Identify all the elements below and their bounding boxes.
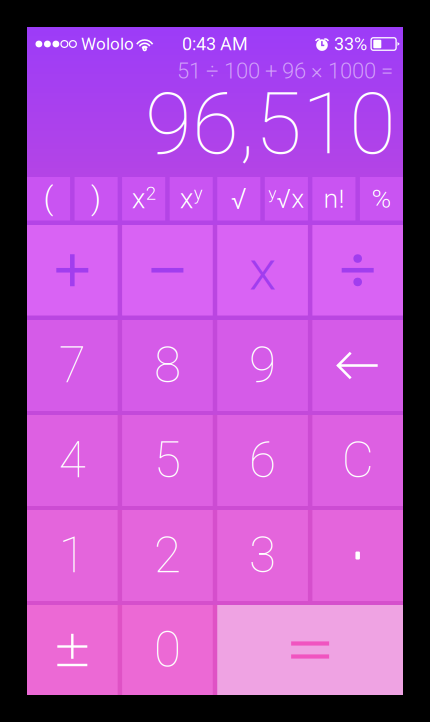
button[interactable]: 4 [27, 415, 118, 506]
button[interactable]: C [312, 415, 403, 506]
button[interactable]: Plus or minus [27, 605, 118, 695]
button[interactable]: 9 [217, 320, 308, 411]
button[interactable]: ) [75, 177, 118, 220]
button[interactable]: factorial [312, 177, 355, 220]
button[interactable]: plus [27, 225, 118, 315]
staticText: 9 [249, 337, 276, 394]
button[interactable]: Equals [217, 605, 403, 695]
button[interactable]: multiply [217, 225, 308, 315]
staticText: 51 ÷ 100 + 96 × 1000 = [177, 58, 393, 84]
staticText: 2 [154, 527, 181, 584]
staticText: n! [323, 183, 344, 214]
staticText: ( [43, 181, 53, 217]
staticText: 0:43 AM [182, 33, 248, 55]
staticText: 3 [249, 527, 276, 584]
button[interactable]: Decimal point [312, 510, 403, 601]
staticText: 1 [59, 527, 86, 584]
staticText: √ [231, 182, 247, 216]
button[interactable]: minus [122, 225, 213, 315]
button[interactable]: ( [27, 177, 70, 220]
staticText: 0 [154, 621, 181, 679]
staticText: y [194, 182, 203, 204]
staticText: x [249, 237, 276, 303]
staticText: √x [276, 183, 304, 214]
button[interactable]: 1 [27, 510, 118, 601]
staticText: y [268, 183, 276, 203]
staticText: 33% [334, 33, 367, 55]
button[interactable]: 3 [217, 510, 308, 601]
staticText: x [132, 182, 146, 215]
button[interactable]: 0 [122, 605, 213, 695]
staticText: 5 [154, 432, 181, 489]
button[interactable]: 6 [217, 415, 308, 506]
staticText: 4 [59, 432, 86, 489]
button[interactable]: y-th root of x [265, 177, 308, 220]
button[interactable]: percent [360, 177, 403, 220]
staticText: 2 [146, 182, 156, 204]
button[interactable]: 7 [27, 320, 118, 411]
staticText: C [342, 432, 374, 489]
button[interactable]: divide [312, 225, 403, 315]
button[interactable]: x to the power y [170, 177, 213, 220]
staticText: 6 [249, 432, 276, 489]
staticText: Wololo [81, 34, 134, 54]
staticText: 96,510 [145, 74, 396, 174]
button[interactable]: 8 [122, 320, 213, 411]
staticText: 8 [154, 337, 181, 394]
button[interactable]: x squared [122, 177, 165, 220]
button[interactable]: 2 [122, 510, 213, 601]
button[interactable]: square root [217, 177, 260, 220]
staticText: 7 [59, 337, 86, 394]
button[interactable]: 5 [122, 415, 213, 506]
staticText: % [371, 183, 391, 214]
staticText: ) [91, 181, 101, 217]
button[interactable]: Backspace [312, 320, 403, 411]
staticText: x [180, 182, 194, 215]
